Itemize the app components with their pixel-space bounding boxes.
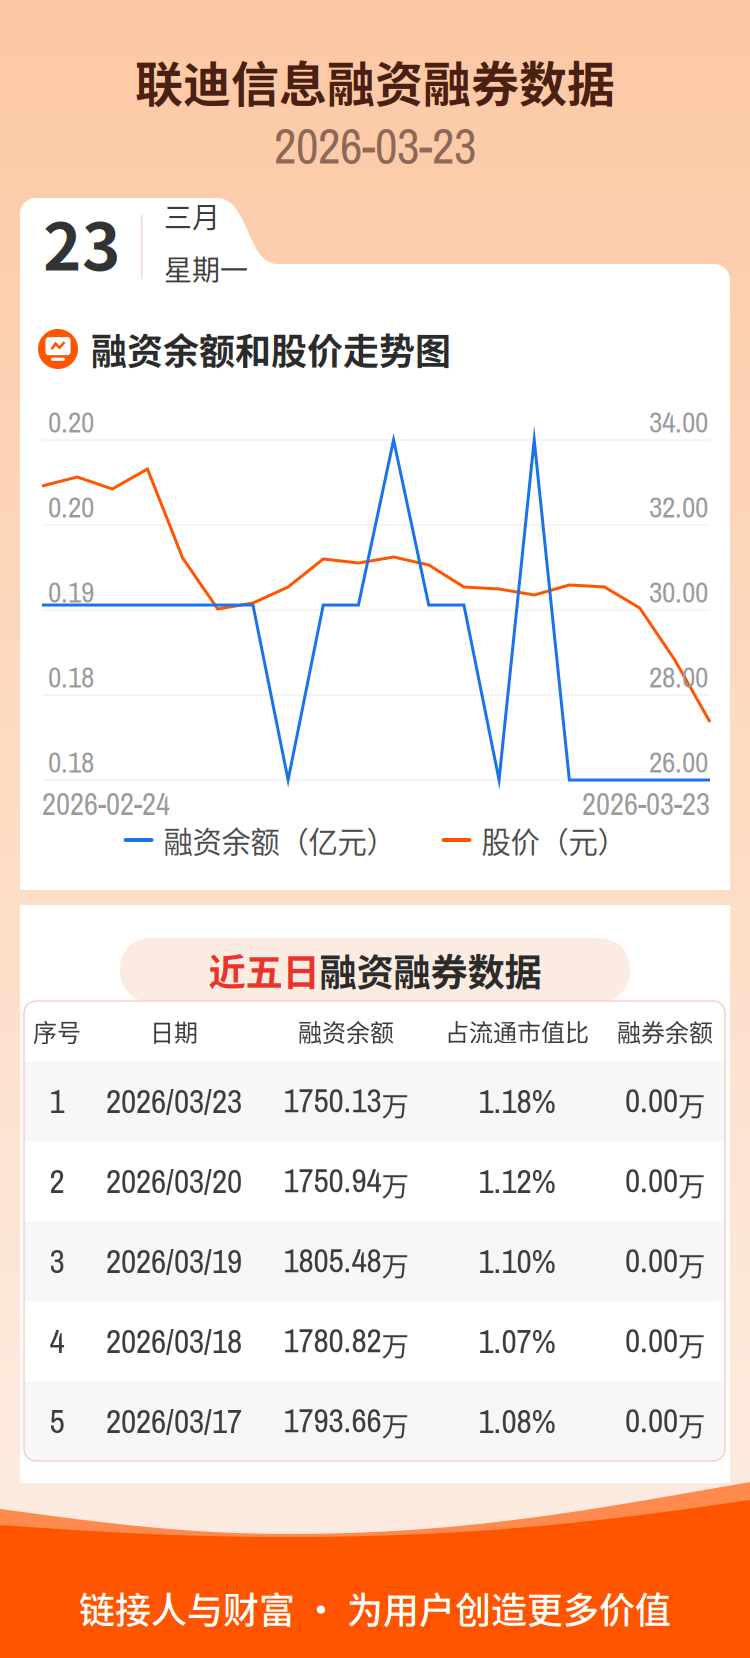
staticText: 2026/03/19	[106, 1239, 242, 1283]
staticText: 2026/03/17	[106, 1399, 242, 1443]
staticText: 融资余额（亿元）	[163, 819, 395, 861]
staticText: 1	[49, 1079, 64, 1123]
staticText: 1780.82万	[283, 1318, 408, 1364]
staticText: 1750.94万	[283, 1158, 408, 1204]
staticText: 近五日	[208, 943, 319, 997]
staticText: 30.00	[649, 572, 708, 612]
staticText: 0.20	[48, 487, 94, 527]
staticText: 融资余额	[298, 1014, 394, 1048]
staticText: 联迪信息融资融券数据	[135, 46, 615, 115]
staticText: 星期一	[164, 248, 248, 288]
staticText: 2026/03/23	[106, 1079, 242, 1123]
staticText: 34.00	[649, 402, 708, 442]
staticText: 股价（元）	[481, 819, 626, 861]
staticText: 0.18	[48, 657, 94, 697]
staticText: 融资融券数据	[319, 943, 541, 997]
staticText: 1805.48万	[283, 1238, 408, 1284]
staticText: 0.00万	[625, 1318, 705, 1364]
staticText: 1793.66万	[283, 1398, 408, 1444]
staticText: 序号	[33, 1014, 81, 1048]
staticText: 融资余额和股价走势图	[91, 323, 451, 375]
staticText: 2026-03-23	[274, 112, 476, 179]
staticText: 1.18%	[478, 1079, 555, 1123]
staticText: 4	[49, 1319, 64, 1363]
staticText: 2	[49, 1159, 64, 1203]
staticText: 2026-02-24	[42, 783, 170, 825]
staticText: 0.00万	[625, 1238, 705, 1284]
staticText: 26.00	[649, 742, 708, 782]
staticText: 28.00	[649, 657, 708, 697]
staticText: 2026-03-23	[582, 783, 710, 825]
staticText: 1750.13万	[283, 1078, 408, 1124]
staticText: 1.12%	[478, 1159, 555, 1203]
staticText: 链接人与财富 · 为用户创造更多价值	[79, 1582, 671, 1634]
staticText: 占流通市值比	[445, 1014, 589, 1048]
staticText: 2026/03/20	[106, 1159, 242, 1203]
staticText: 23	[43, 195, 121, 289]
staticText: 2026/03/18	[106, 1319, 242, 1363]
staticText: 0.19	[48, 572, 94, 612]
staticText: 1.07%	[478, 1319, 555, 1363]
staticText: 0.20	[48, 402, 94, 442]
staticText: 融券余额	[617, 1014, 713, 1048]
staticText: 5	[49, 1399, 64, 1443]
staticText: 三月	[164, 195, 220, 236]
staticText: 1.08%	[478, 1399, 555, 1443]
staticText: 0.18	[48, 742, 94, 782]
staticText: 32.00	[649, 487, 708, 527]
staticText: 0.00万	[625, 1398, 705, 1444]
staticText: 3	[49, 1239, 64, 1283]
staticText: 0.00万	[625, 1078, 705, 1124]
staticText: 日期	[150, 1014, 198, 1048]
staticText: 1.10%	[478, 1239, 555, 1283]
staticText: 0.00万	[625, 1158, 705, 1204]
